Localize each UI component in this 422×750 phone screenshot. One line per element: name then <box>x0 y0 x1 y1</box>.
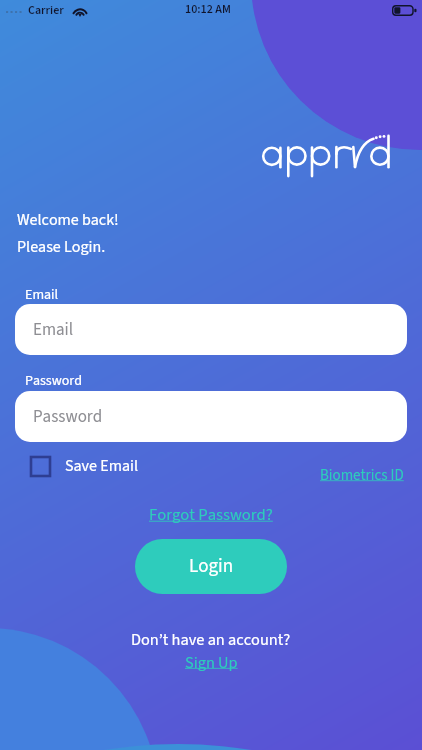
other: apprvd logo <box>258 128 398 180</box>
button[interactable]: Biometrics ID <box>320 465 404 486</box>
staticText: Save Email <box>65 455 138 478</box>
button[interactable]: Forgot Password? <box>149 503 273 527</box>
other: Wi-Fi signal <box>72 4 88 16</box>
staticText: Don’t have an account? <box>131 628 291 651</box>
button[interactable]: Sign Up <box>185 651 238 674</box>
button[interactable]: Password <box>15 391 407 442</box>
staticText: Sign Up <box>185 651 238 674</box>
button[interactable]: Login <box>135 539 287 594</box>
button[interactable]: Save Email <box>31 455 138 478</box>
staticText: Password <box>25 371 82 391</box>
staticText: Carrier <box>28 2 64 19</box>
other: Battery level <box>392 5 418 16</box>
staticText: Forgot Password? <box>149 503 273 527</box>
staticText: Welcome back! <box>17 209 119 232</box>
staticText: Email <box>25 285 59 305</box>
staticText: Email <box>33 318 74 342</box>
button[interactable]: Email <box>15 304 407 355</box>
staticText: Login <box>189 553 234 580</box>
staticText: Password <box>33 405 103 429</box>
staticText: Biometrics ID <box>320 465 404 486</box>
staticText: 10:12 AM <box>185 1 231 18</box>
staticText: Please Login. <box>17 236 106 259</box>
